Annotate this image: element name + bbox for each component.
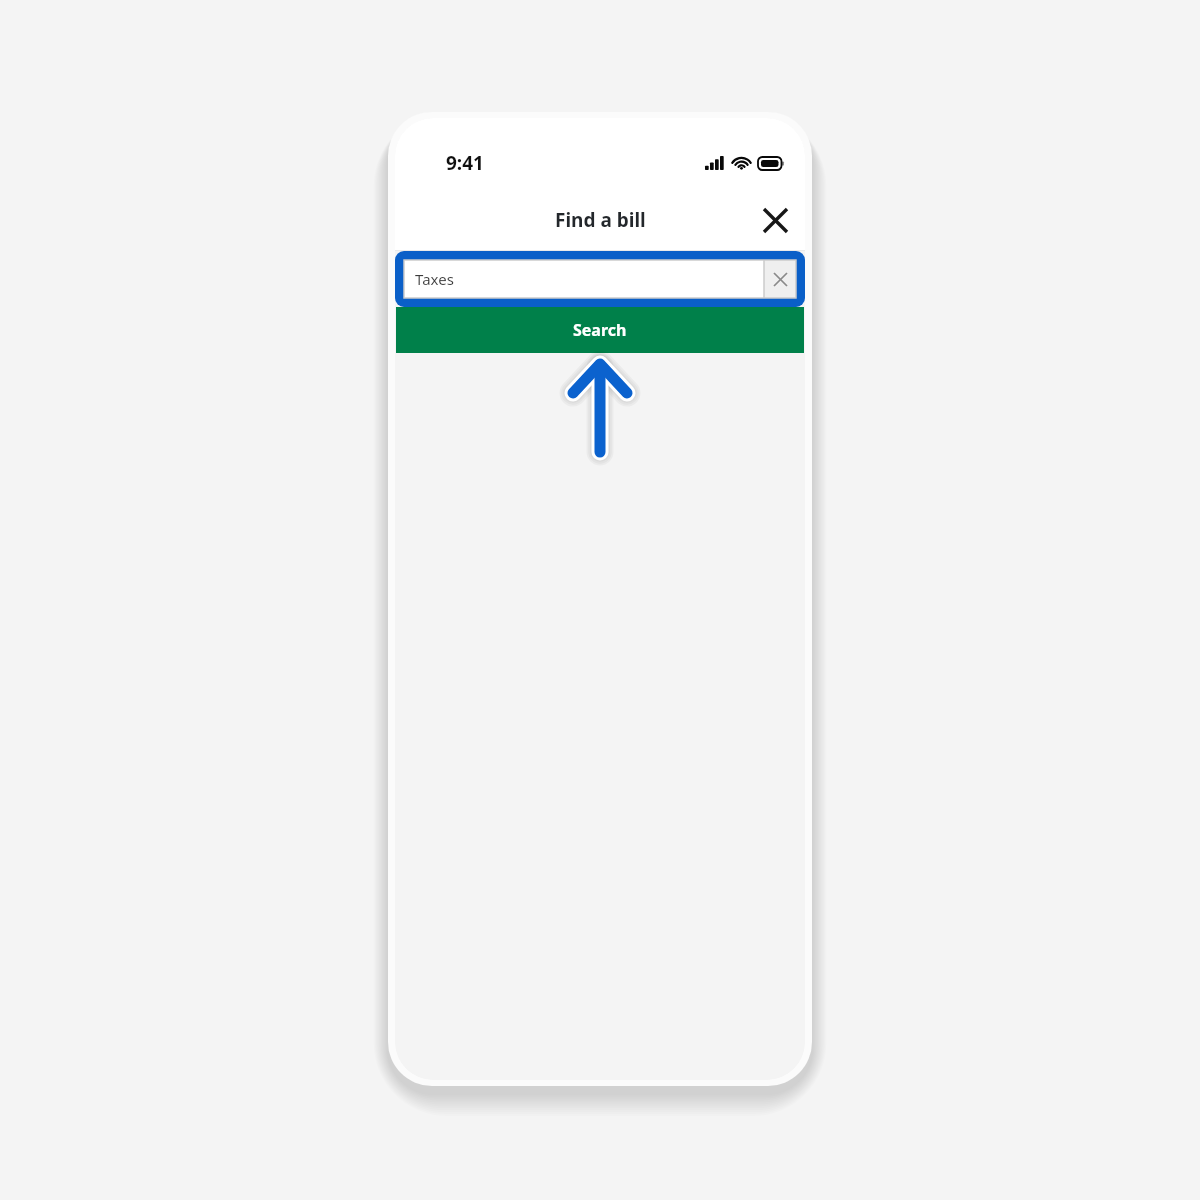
staticText: 9:41: [446, 150, 484, 176]
staticText: Search: [573, 319, 627, 341]
button[interactable]: Search: [396, 307, 804, 353]
staticText: Taxes: [415, 269, 764, 289]
button[interactable]: Close: [753, 198, 797, 242]
button[interactable]: Clear text: [764, 260, 796, 298]
button[interactable]: Taxes: [404, 260, 796, 298]
staticText: Find a bill: [555, 207, 646, 233]
